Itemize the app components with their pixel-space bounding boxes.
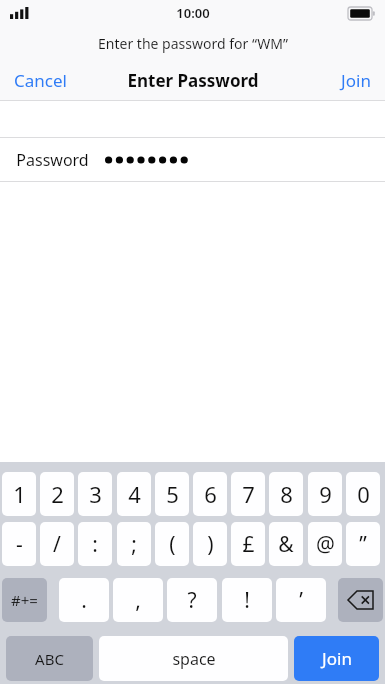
button[interactable]: Cancel bbox=[0, 63, 81, 98]
staticText: - bbox=[16, 530, 23, 559]
staticText: ; bbox=[131, 530, 137, 559]
button[interactable]: Backspace bbox=[338, 578, 383, 622]
button[interactable]: 3 bbox=[78, 472, 112, 516]
button[interactable]: 4 bbox=[117, 472, 151, 516]
button[interactable]: & bbox=[269, 522, 303, 566]
button[interactable]: - bbox=[2, 522, 36, 566]
staticText: & bbox=[278, 530, 294, 559]
staticText: 0 bbox=[357, 479, 370, 509]
button[interactable]: ; bbox=[117, 522, 151, 566]
button[interactable]: 0 bbox=[346, 472, 380, 516]
staticText: 3 bbox=[89, 479, 102, 509]
button[interactable]: / bbox=[40, 522, 74, 566]
button[interactable]: space bbox=[99, 636, 288, 681]
staticText: 6 bbox=[204, 479, 217, 509]
button[interactable]: Join bbox=[327, 63, 385, 98]
staticText: Password bbox=[16, 149, 89, 171]
button[interactable]: , bbox=[113, 578, 163, 622]
button[interactable]: #+= bbox=[2, 578, 47, 622]
staticText: ? bbox=[187, 586, 197, 615]
button[interactable]: ’ bbox=[276, 578, 326, 622]
button[interactable]: ) bbox=[193, 522, 227, 566]
staticText: Join bbox=[341, 69, 371, 92]
staticText: ! bbox=[244, 586, 250, 615]
staticText: ’ bbox=[299, 586, 303, 615]
staticText: Join bbox=[322, 647, 352, 670]
button[interactable]: : bbox=[78, 522, 112, 566]
staticText: . bbox=[81, 586, 87, 615]
button[interactable]: ” bbox=[346, 522, 380, 566]
staticText: / bbox=[53, 530, 61, 559]
staticText: Enter Password bbox=[127, 69, 259, 92]
staticText: , bbox=[135, 586, 141, 615]
staticText: @ bbox=[316, 530, 335, 559]
button[interactable]: Join bbox=[294, 636, 379, 681]
staticText: 10:00 bbox=[176, 4, 210, 22]
button[interactable]: @ bbox=[308, 522, 342, 566]
staticText: £ bbox=[242, 530, 255, 559]
button[interactable]: £ bbox=[231, 522, 265, 566]
button[interactable]: 5 bbox=[155, 472, 189, 516]
staticText: 4 bbox=[128, 479, 141, 509]
staticText: ” bbox=[359, 530, 367, 559]
staticText: ABC bbox=[35, 649, 64, 669]
button[interactable]: 6 bbox=[193, 472, 227, 516]
staticText: : bbox=[92, 530, 98, 559]
button[interactable]: 7 bbox=[231, 472, 265, 516]
staticText: 7 bbox=[242, 479, 255, 509]
staticText: 5 bbox=[166, 479, 179, 509]
staticText: Cancel bbox=[14, 69, 67, 92]
button[interactable]: ! bbox=[222, 578, 272, 622]
button[interactable]: ( bbox=[155, 522, 189, 566]
button[interactable]: 2 bbox=[40, 472, 74, 516]
staticText: #+= bbox=[11, 590, 38, 610]
staticText: ) bbox=[207, 530, 214, 559]
staticText: 9 bbox=[319, 479, 332, 509]
button[interactable]: 8 bbox=[269, 472, 303, 516]
staticText: 1 bbox=[13, 479, 26, 509]
button[interactable]: ? bbox=[167, 578, 217, 622]
staticText: ( bbox=[169, 530, 176, 559]
button[interactable]: Password bbox=[0, 138, 385, 181]
staticText: 2 bbox=[51, 479, 64, 509]
button[interactable]: ABC bbox=[6, 636, 93, 681]
staticText: 8 bbox=[280, 479, 293, 509]
staticText: Enter the password for “WM” bbox=[98, 34, 288, 53]
button[interactable]: . bbox=[59, 578, 109, 622]
button[interactable]: 1 bbox=[2, 472, 36, 516]
button[interactable]: 9 bbox=[308, 472, 342, 516]
staticText: space bbox=[172, 648, 216, 670]
